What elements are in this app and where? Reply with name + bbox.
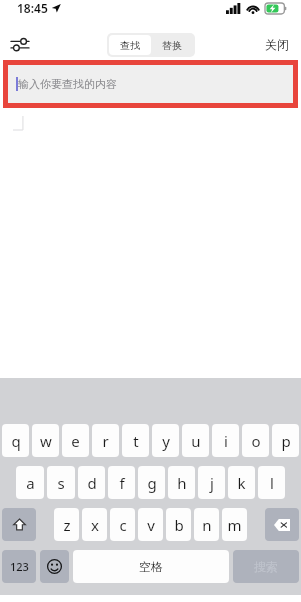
button[interactable]: 替换 [151, 35, 193, 55]
button[interactable]: k [228, 466, 255, 499]
button[interactable]: g [138, 466, 165, 499]
staticText: u [191, 431, 201, 451]
staticText: 替换 [162, 39, 182, 52]
staticText: 搜索 [254, 559, 278, 574]
staticText: 18:45 [17, 0, 48, 16]
button[interactable]: d [78, 466, 105, 499]
button[interactable]: 123 [2, 550, 36, 583]
staticText: a [26, 473, 35, 493]
staticText: x [91, 515, 99, 535]
staticText: 空格 [139, 559, 163, 574]
button[interactable]: m [222, 508, 247, 541]
staticText: i [224, 431, 228, 451]
button[interactable]: c [110, 508, 135, 541]
button[interactable]: u [182, 424, 209, 457]
button[interactable]: Backspace [265, 508, 299, 541]
button[interactable]: q [2, 424, 29, 457]
staticText: z [63, 515, 71, 535]
button[interactable]: t [122, 424, 149, 457]
button[interactable]: r [92, 424, 119, 457]
staticText: 关闭 [265, 37, 289, 52]
staticText: 123 [10, 559, 29, 574]
button[interactable]: i [212, 424, 239, 457]
button[interactable]: Shift [2, 508, 36, 541]
button[interactable]: h [168, 466, 195, 499]
button[interactable]: x [82, 508, 107, 541]
button[interactable]: j [198, 466, 225, 499]
button[interactable]: w [32, 424, 59, 457]
staticText: l [270, 473, 274, 493]
button[interactable]: 空格 [73, 550, 229, 583]
button[interactable]: z [54, 508, 79, 541]
staticText: s [57, 473, 65, 493]
button[interactable]: f [108, 466, 135, 499]
button[interactable]: n [194, 508, 219, 541]
staticText: b [174, 515, 184, 535]
button[interactable]: o [242, 424, 269, 457]
staticText: o [251, 431, 261, 451]
button[interactable]: e [62, 424, 89, 457]
button[interactable]: 查找 [109, 35, 151, 55]
staticText: e [71, 431, 80, 451]
staticText: p [281, 431, 291, 451]
staticText: 输入你要查找的内容 [18, 77, 117, 91]
button[interactable]: Settings [6, 31, 34, 58]
staticText: 查找 [120, 39, 140, 52]
button[interactable]: a [16, 466, 44, 499]
staticText: t [133, 431, 139, 451]
staticText: f [119, 473, 125, 493]
staticText: y [162, 431, 170, 451]
button[interactable]: s [47, 466, 75, 499]
button[interactable]: v [138, 508, 163, 541]
staticText: v [147, 515, 155, 535]
staticText: k [237, 473, 246, 493]
button[interactable]: y [152, 424, 179, 457]
staticText: q [11, 431, 21, 451]
button[interactable]: l [258, 466, 285, 499]
staticText: n [202, 515, 212, 535]
staticText: h [177, 473, 187, 493]
button[interactable]: Emoji [40, 550, 69, 583]
button[interactable]: 输入你要查找的内容 [8, 65, 293, 103]
button[interactable]: 关闭 [265, 37, 289, 52]
staticText: d [87, 473, 97, 493]
staticText: w [40, 431, 52, 451]
staticText: m [227, 515, 242, 535]
staticText: r [102, 431, 109, 451]
staticText: g [147, 473, 157, 493]
button[interactable]: b [166, 508, 191, 541]
button[interactable]: p [272, 424, 299, 457]
staticText: j [210, 473, 214, 493]
staticText: c [119, 515, 127, 535]
button[interactable]: 搜索 [233, 550, 299, 583]
